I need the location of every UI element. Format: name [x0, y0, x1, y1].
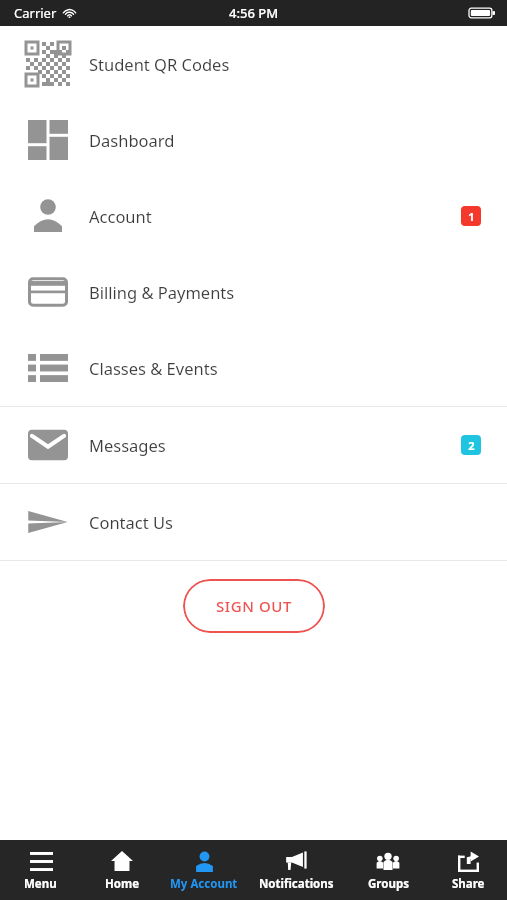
staticText: 1 [468, 209, 475, 224]
staticText: Notifications [259, 876, 334, 892]
button[interactable]: Contact Us [0, 484, 507, 560]
button[interactable]: Account [0, 178, 507, 254]
staticText: My Account [170, 876, 238, 892]
button[interactable]: Dashboard [0, 102, 507, 178]
button[interactable]: Classes & Events [0, 330, 507, 406]
button[interactable]: Student QR Codes [0, 26, 507, 102]
staticText: Share [452, 876, 485, 892]
staticText: 4:56 PM [229, 4, 279, 22]
staticText: Classes & Events [89, 357, 218, 379]
button[interactable]: My Account [163, 840, 245, 900]
staticText: Billing & Payments [89, 281, 235, 303]
staticText: Contact Us [89, 511, 173, 533]
button[interactable]: Messages [0, 407, 507, 483]
staticText: SIGN OUT [216, 596, 293, 616]
button[interactable]: Share [429, 840, 507, 900]
button[interactable]: Groups [347, 840, 429, 900]
button[interactable]: Home [81, 840, 163, 900]
staticText: Menu [24, 876, 57, 892]
button[interactable]: Billing & Payments [0, 254, 507, 330]
staticText: Messages [89, 434, 166, 456]
button[interactable]: SIGN OUT [183, 579, 325, 633]
staticText: Carrier [14, 4, 57, 22]
staticText: 2 [468, 438, 475, 453]
staticText: Dashboard [89, 129, 175, 151]
button[interactable]: Notifications [245, 840, 347, 900]
staticText: Student QR Codes [89, 53, 230, 75]
staticText: Account [89, 205, 152, 227]
button[interactable]: Menu [0, 840, 81, 900]
staticText: Home [105, 876, 140, 892]
staticText: Groups [368, 876, 409, 892]
